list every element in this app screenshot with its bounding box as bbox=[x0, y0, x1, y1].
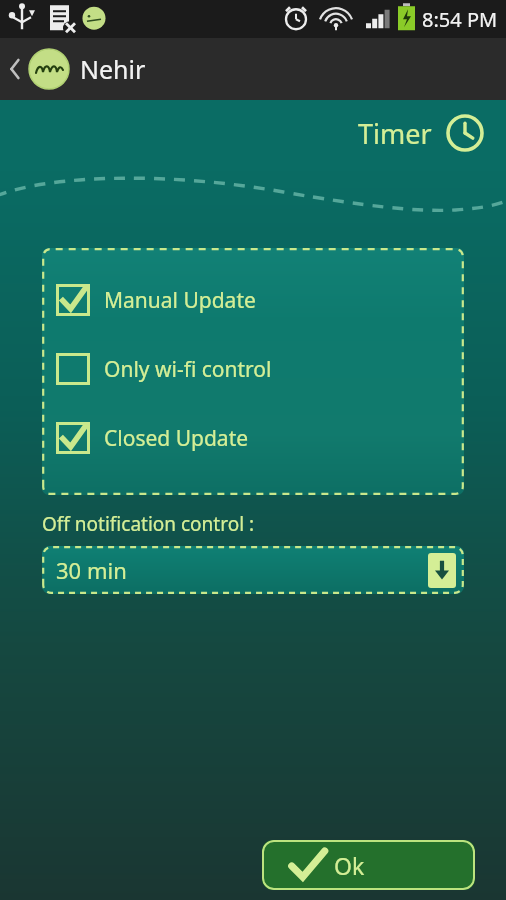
button[interactable]: Nehir bbox=[0, 38, 506, 100]
button[interactable]: 30 min bbox=[42, 546, 464, 594]
other: Open dropdown bbox=[428, 553, 456, 588]
staticText: Ok bbox=[334, 850, 365, 881]
button[interactable]: Closed Update bbox=[54, 420, 251, 456]
staticText: Manual Update bbox=[104, 286, 256, 315]
button[interactable]: Only wi-fi control bbox=[54, 351, 274, 387]
staticText: 8:54 PM bbox=[422, 6, 498, 33]
staticText: Nehir bbox=[80, 52, 146, 86]
button[interactable]: Timer bbox=[358, 114, 484, 152]
button[interactable]: Ok bbox=[262, 840, 475, 890]
staticText: 30 min bbox=[56, 555, 127, 585]
staticText: Only wi-fi control bbox=[104, 355, 272, 384]
button[interactable]: Manual Update bbox=[54, 282, 258, 318]
other: Timer bbox=[446, 114, 484, 152]
staticText: Closed Update bbox=[104, 424, 249, 453]
staticText: Timer bbox=[358, 115, 432, 152]
staticText: Off notification control : bbox=[42, 511, 255, 537]
